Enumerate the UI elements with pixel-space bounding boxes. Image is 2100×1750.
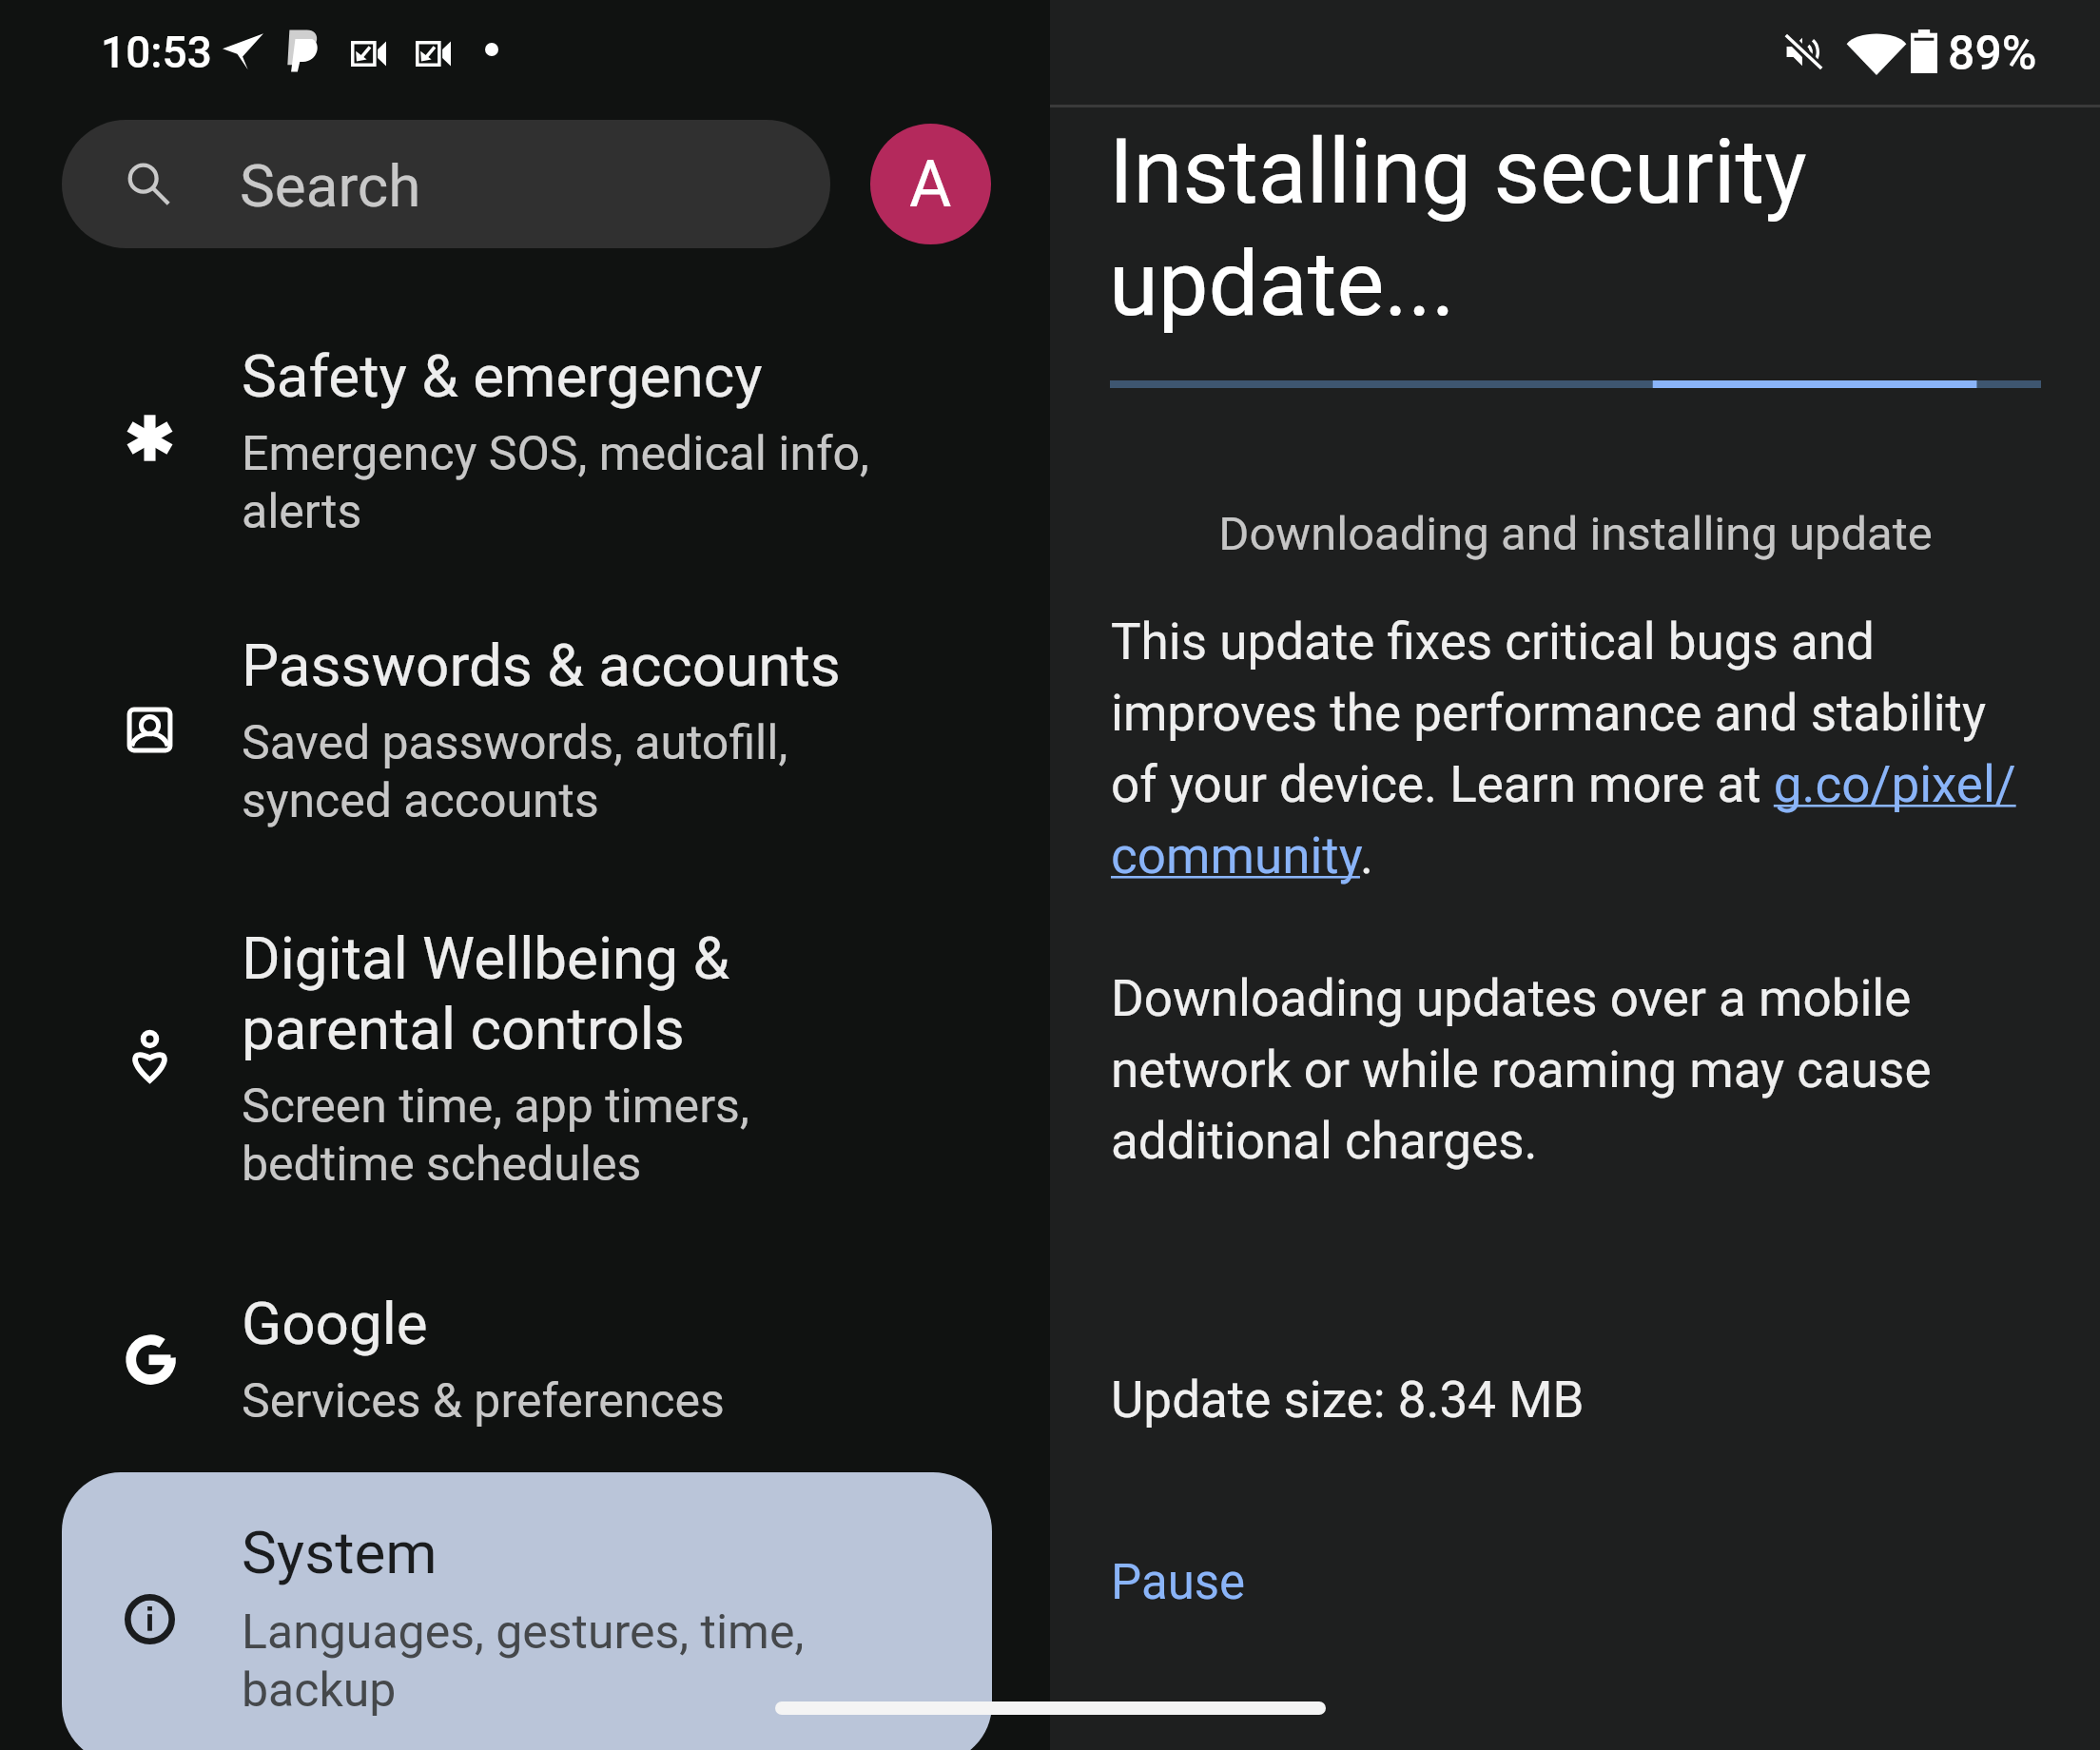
other: Battery 89 percent [1911, 29, 1937, 73]
staticText: Screen time, app timers, bedtime schedul… [242, 1079, 749, 1192]
staticText: Safety & emergency [242, 341, 763, 411]
staticText: Digital Wellbeing & parental controls [242, 924, 729, 1063]
staticText: Services & preferences [242, 1373, 725, 1429]
staticText: Emergency SOS, medical info, alerts [242, 426, 869, 539]
staticText: 10:53 [101, 27, 212, 78]
staticText: Search [240, 151, 421, 221]
button[interactable]: Search [62, 120, 830, 248]
other: Wi-Fi [1846, 29, 1907, 75]
staticText: Pause [1111, 1554, 1246, 1611]
button[interactable]: Pause [1088, 1531, 1269, 1634]
staticText: A [909, 146, 952, 223]
staticText: 89% [1948, 26, 2037, 82]
staticText: Update size: 8.34 MB [1111, 1371, 1585, 1429]
staticText: Passwords & accounts [242, 631, 841, 700]
button[interactable]: Google [0, 1258, 1050, 1482]
staticText: Installing security update... [1109, 120, 1807, 337]
button[interactable]: Account avatar [870, 124, 991, 244]
staticText: System [242, 1518, 437, 1587]
button[interactable]: Passwords & accounts [0, 600, 1050, 852]
button[interactable]: Safety & emergency [0, 311, 1050, 563]
button[interactable]: System [62, 1472, 992, 1750]
staticText: Downloading and installing update [1110, 507, 2041, 561]
staticText: Saved passwords, autofill, synced accoun… [242, 715, 788, 828]
staticText: Google [242, 1289, 428, 1358]
staticText: This update fixes critical bugs and impr… [1111, 612, 2029, 1171]
button[interactable]: Digital Wellbeing & parental controls [0, 893, 1050, 1212]
other: Silent mode [1785, 33, 1822, 70]
staticText: Languages, gestures, time, backup [242, 1604, 805, 1718]
